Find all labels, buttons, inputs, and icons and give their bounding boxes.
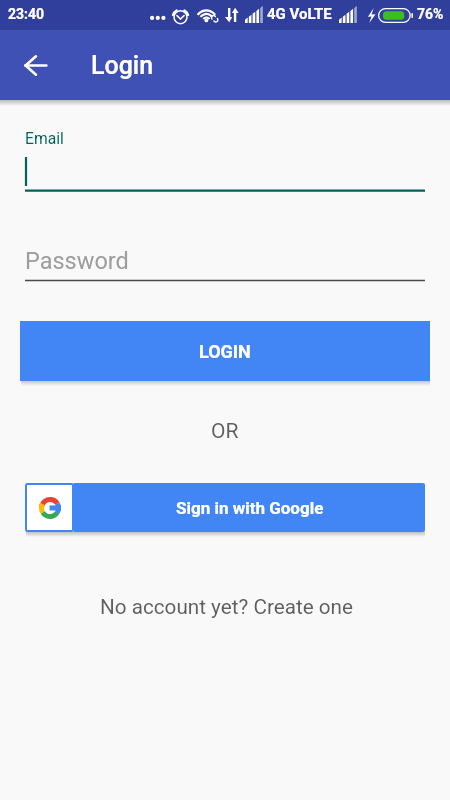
staticText: 76% [417,6,444,22]
staticText: LOGIN [199,341,251,362]
staticText: Login [91,51,154,80]
button[interactable]: LOGIN [20,321,430,381]
staticText: Email [25,129,64,147]
button[interactable]: No account yet? Create one [100,595,353,619]
staticText: 4G VoLTE [267,5,332,23]
staticText: Sign in with Google [176,498,324,518]
staticText: OR [211,419,239,444]
button[interactable]: Back [13,43,57,87]
staticText: 23:40 [8,6,45,22]
staticText: Password [25,247,129,275]
button[interactable]: Sign in with Google [25,483,425,532]
